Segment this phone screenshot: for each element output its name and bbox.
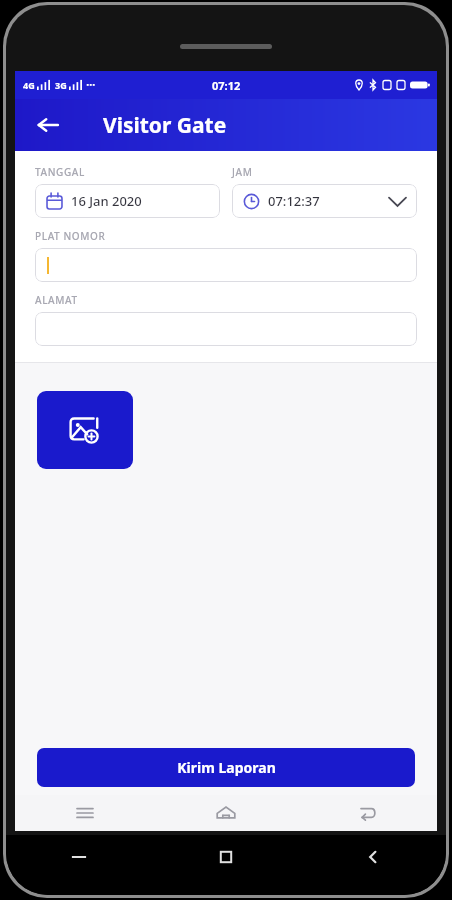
staticText: ALAMAT: [35, 293, 78, 307]
button[interactable]: Recents: [152, 835, 299, 879]
staticText: JAM: [232, 165, 253, 179]
staticText: Kirim Laporan: [177, 758, 276, 777]
button[interactable]: [35, 312, 417, 346]
button[interactable]: Add photo: [37, 391, 133, 469]
button[interactable]: Back: [27, 104, 69, 146]
button[interactable]: Back: [299, 835, 446, 879]
button[interactable]: Home: [155, 795, 296, 831]
staticText: Visitor Gate: [103, 111, 227, 140]
staticText: TANGGAL: [35, 165, 85, 179]
button[interactable]: Menu: [15, 795, 155, 831]
button[interactable]: Minimize: [6, 835, 152, 879]
button[interactable]: 16 Jan 2020: [35, 184, 220, 218]
staticText: 07:12: [212, 78, 241, 93]
staticText: 4G: [23, 79, 35, 91]
staticText: 07:12:37: [268, 192, 320, 210]
staticText: ⋯: [86, 80, 95, 90]
button[interactable]: [35, 248, 417, 282]
staticText: PLAT NOMOR: [35, 229, 106, 243]
button[interactable]: Kirim Laporan: [37, 748, 415, 787]
button[interactable]: 07:12:37: [232, 184, 417, 218]
button[interactable]: Back: [296, 795, 437, 831]
staticText: 3G: [55, 79, 67, 91]
staticText: 16 Jan 2020: [71, 192, 142, 210]
